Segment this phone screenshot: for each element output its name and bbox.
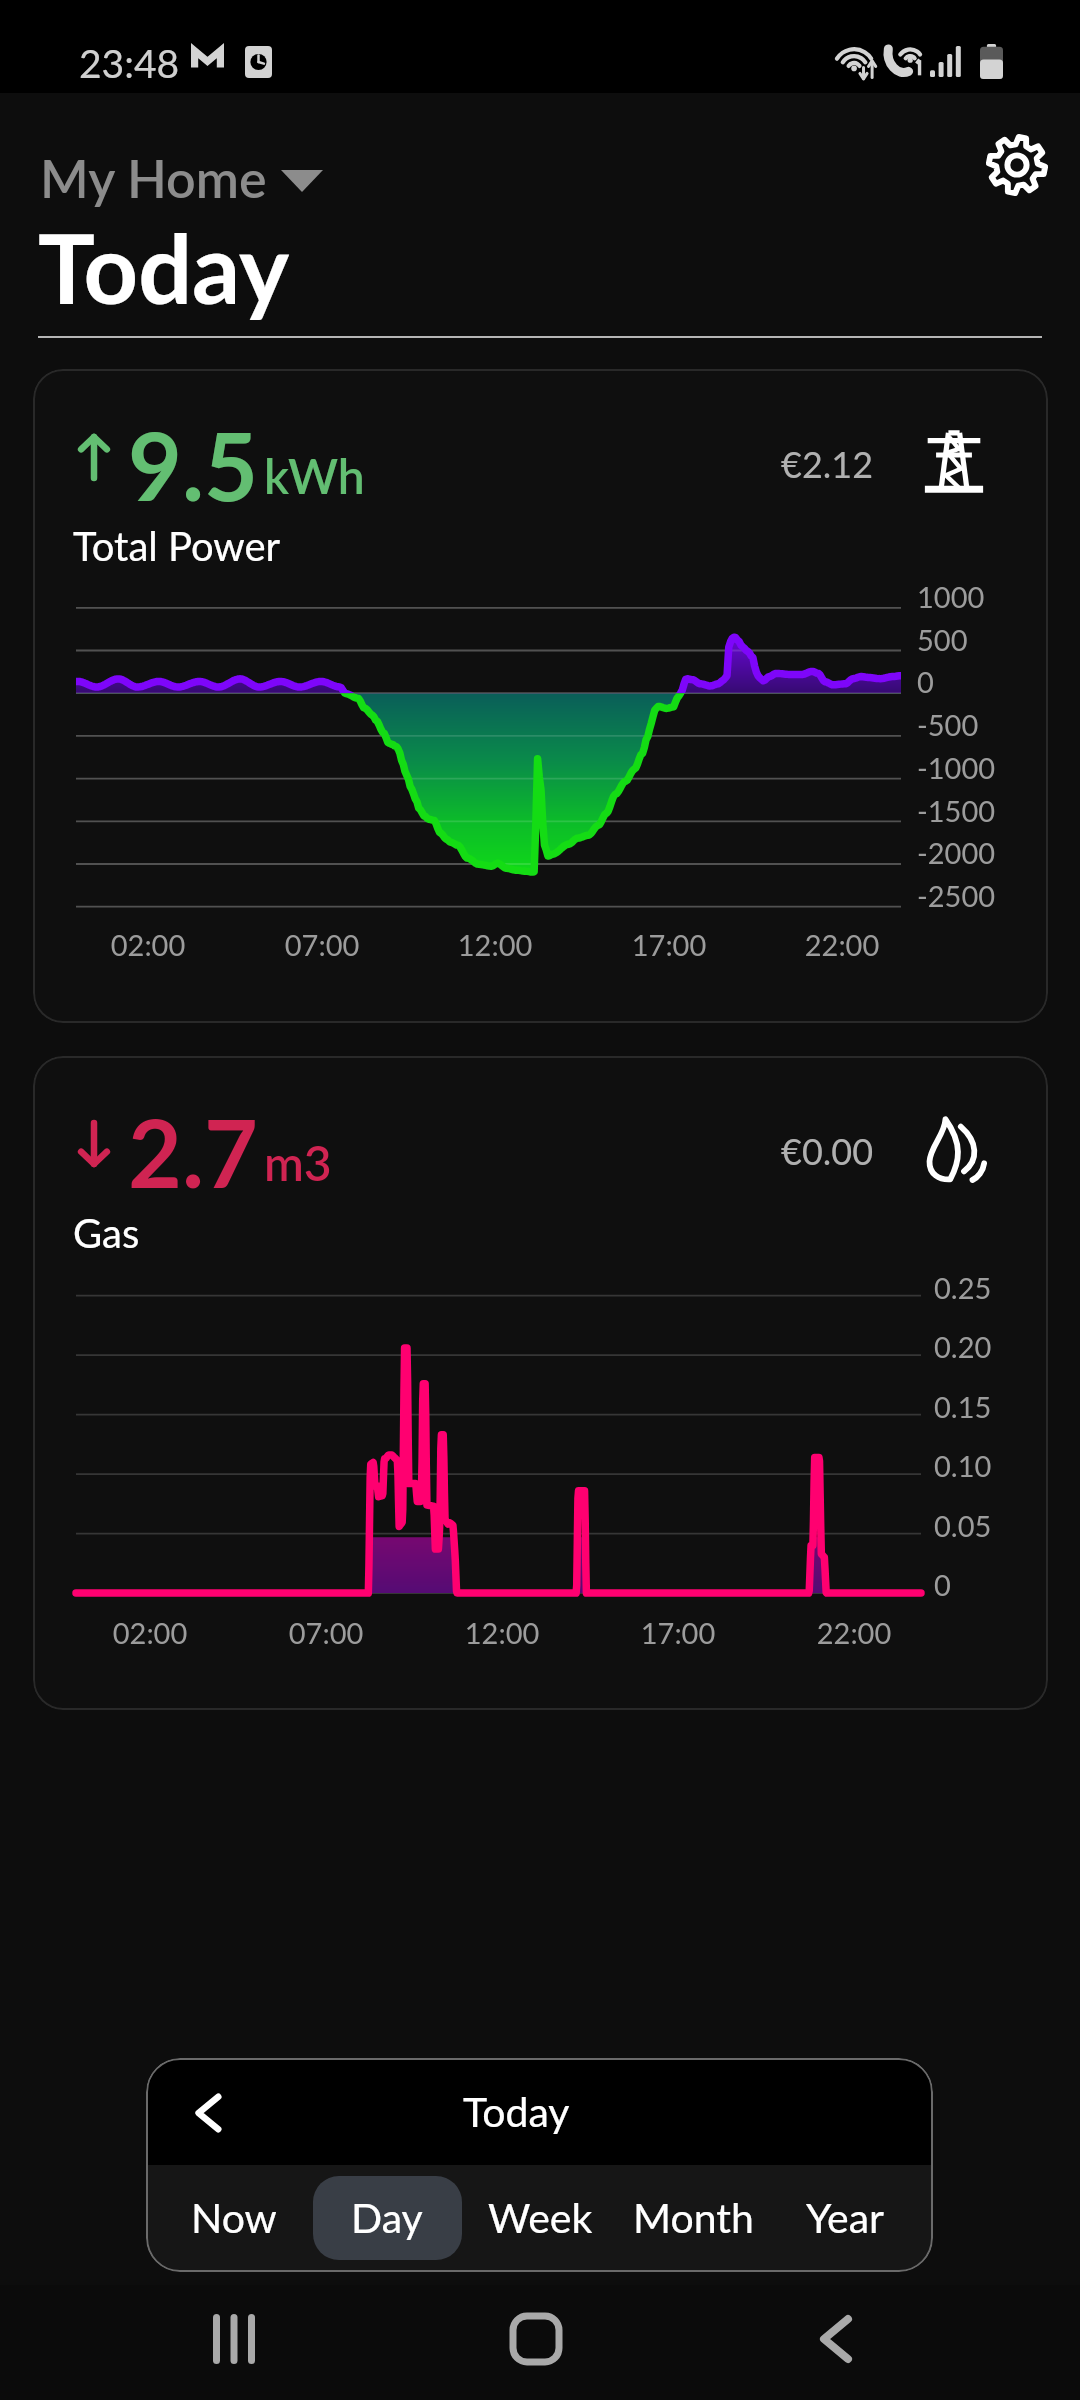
- staticText: 0: [934, 1567, 951, 1602]
- staticText: -1000: [917, 750, 996, 785]
- button[interactable]: Home: [476, 2291, 596, 2387]
- staticText: Today: [38, 210, 289, 324]
- staticText: -2000: [917, 835, 996, 870]
- button[interactable]: Recent apps: [174, 2291, 294, 2387]
- button[interactable]: My Home: [40, 147, 323, 209]
- button[interactable]: Previous period: [180, 2084, 238, 2142]
- staticText: Month: [633, 2193, 754, 2242]
- staticText: 17:00: [618, 1615, 738, 1650]
- button[interactable]: Now: [162, 2175, 306, 2259]
- staticText: 22:00: [782, 927, 902, 962]
- button[interactable]: Day: [315, 2175, 459, 2259]
- staticText: 9.5: [128, 409, 258, 521]
- staticText: 12:00: [435, 927, 555, 962]
- staticText: €0.00: [781, 1129, 874, 1172]
- staticText: Year: [806, 2193, 885, 2242]
- staticText: 0: [917, 664, 934, 699]
- staticText: 12:00: [442, 1615, 562, 1650]
- staticText: 500: [917, 622, 968, 657]
- staticText: Week: [488, 2193, 593, 2242]
- staticText: 23:48: [79, 40, 180, 87]
- button[interactable]: 9.5: [33, 369, 1048, 1023]
- staticText: Now: [191, 2193, 277, 2242]
- staticText: Day: [351, 2193, 423, 2242]
- button[interactable]: Year: [773, 2175, 917, 2259]
- staticText: -500: [917, 707, 979, 742]
- button[interactable]: Settings: [986, 134, 1048, 196]
- staticText: €2.12: [781, 442, 874, 485]
- button[interactable]: Week: [468, 2175, 612, 2259]
- button[interactable]: Back: [776, 2291, 896, 2387]
- staticText: -1500: [917, 793, 996, 828]
- staticText: 07:00: [262, 927, 382, 962]
- staticText: m3: [264, 1134, 332, 1192]
- staticText: 07:00: [266, 1615, 386, 1650]
- staticText: 0.15: [934, 1389, 992, 1424]
- staticText: 17:00: [609, 927, 729, 962]
- staticText: 0.10: [934, 1448, 992, 1483]
- staticText: My Home: [40, 147, 267, 209]
- staticText: 02:00: [90, 1615, 210, 1650]
- staticText: 1000: [917, 579, 985, 614]
- staticText: Today: [463, 2087, 570, 2136]
- staticText: 2.7: [128, 1096, 258, 1208]
- staticText: 0.05: [934, 1508, 992, 1543]
- staticText: 02:00: [88, 927, 208, 962]
- staticText: kWh: [264, 447, 365, 505]
- staticText: Gas: [73, 1209, 140, 1257]
- staticText: 22:00: [794, 1615, 914, 1650]
- staticText: -2500: [917, 878, 996, 913]
- button[interactable]: Month: [621, 2175, 765, 2259]
- button[interactable]: 2.7: [33, 1056, 1048, 1710]
- staticText: 0.25: [934, 1270, 992, 1305]
- staticText: Total Power: [73, 522, 281, 570]
- staticText: 0.20: [934, 1329, 992, 1364]
